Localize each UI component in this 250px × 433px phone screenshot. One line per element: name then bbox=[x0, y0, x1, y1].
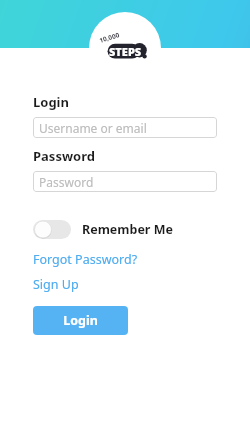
button[interactable]: Forgot Password? bbox=[33, 251, 138, 268]
staticText: Login bbox=[63, 312, 98, 329]
staticText: Forgot Password? bbox=[33, 251, 138, 268]
staticText: Remember Me bbox=[82, 221, 173, 238]
button[interactable]: Password bbox=[33, 171, 217, 192]
staticText: Login bbox=[33, 93, 69, 111]
button[interactable]: Remember Me toggle bbox=[33, 218, 173, 241]
button[interactable]: Sign Up bbox=[33, 276, 79, 293]
button[interactable]: Username or email bbox=[33, 117, 217, 138]
staticText: Password bbox=[39, 174, 94, 190]
staticText: Password bbox=[33, 147, 95, 165]
button[interactable]: Remember Me toggle bbox=[33, 220, 71, 239]
staticText: 10,000 bbox=[98, 30, 121, 45]
staticText: STEPS bbox=[109, 44, 142, 59]
staticText: Username or email bbox=[39, 120, 147, 136]
staticText: Sign Up bbox=[33, 276, 79, 293]
button[interactable]: Login bbox=[33, 306, 128, 335]
